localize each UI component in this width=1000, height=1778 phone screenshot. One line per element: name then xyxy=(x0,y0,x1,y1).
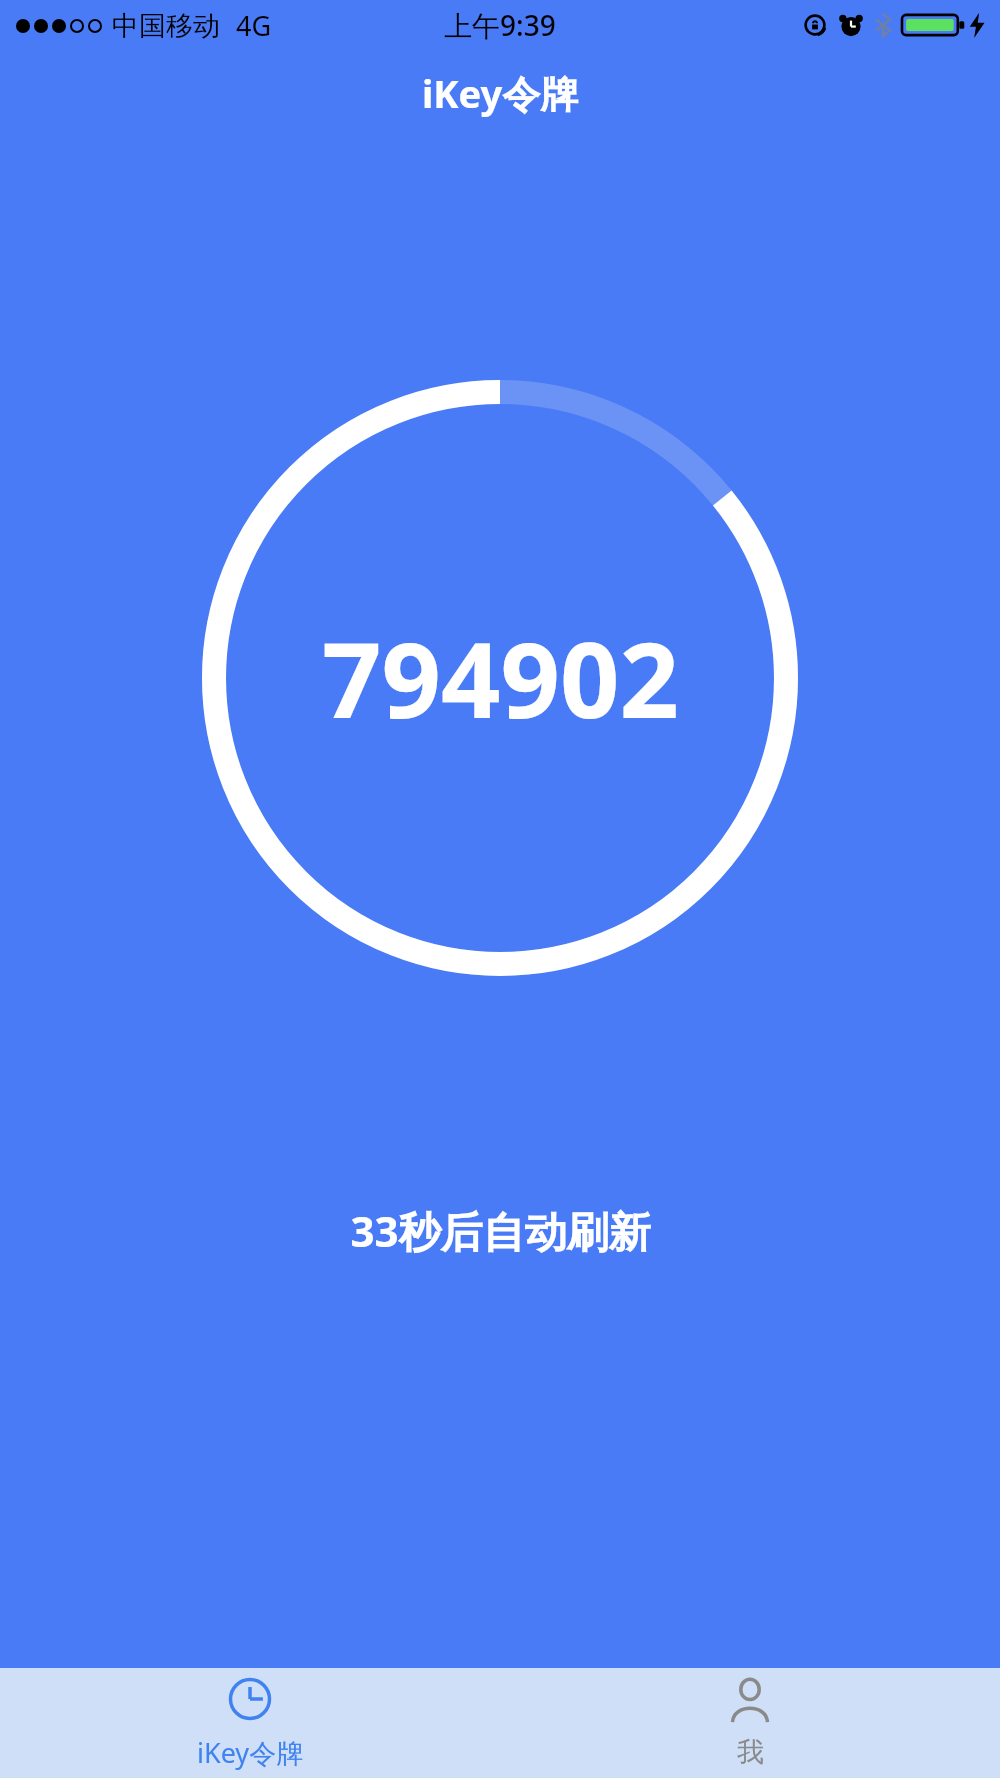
staticText: iKey令牌 xyxy=(197,1734,304,1771)
staticText: 上午9:39 xyxy=(444,6,556,44)
staticText: 794902 xyxy=(322,607,679,749)
button[interactable]: iKey令牌 xyxy=(0,1668,500,1778)
staticText: 4G xyxy=(236,7,272,44)
staticText: iKey令牌 xyxy=(422,67,579,119)
staticText: 我 xyxy=(737,1735,764,1769)
button[interactable]: 794902 xyxy=(190,368,810,988)
staticText: 中国移动 xyxy=(112,9,220,43)
staticText: 33秒后自动刷新 xyxy=(350,1202,651,1259)
button[interactable]: 我 xyxy=(500,1668,1000,1778)
